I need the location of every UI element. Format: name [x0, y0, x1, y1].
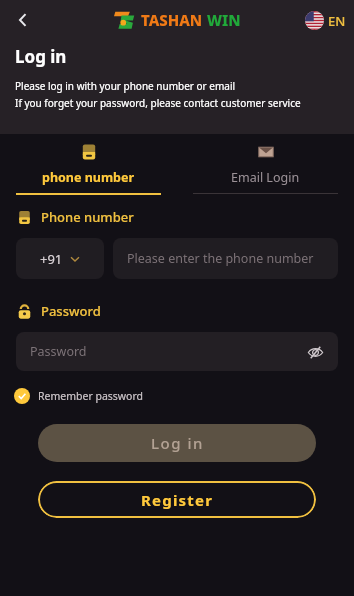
staticText: Password [41, 302, 101, 320]
staticText: Log in [15, 45, 67, 68]
staticText: Password [30, 343, 87, 360]
button[interactable]: +91 [16, 238, 104, 279]
staticText: TASHAN [141, 10, 203, 30]
staticText: Please enter the phone number [127, 250, 314, 267]
button[interactable]: Back [6, 3, 40, 37]
button[interactable]: Log in [38, 424, 316, 462]
staticText: phone number [42, 169, 135, 186]
button[interactable]: EN [305, 11, 346, 30]
button[interactable]: Remember password [14, 388, 144, 404]
staticText: Log in [151, 433, 204, 453]
button[interactable]: Password [16, 332, 338, 371]
button[interactable]: Email Login [177, 134, 354, 194]
staticText: Phone number [41, 208, 134, 226]
staticText: Remember password [38, 389, 144, 403]
button[interactable]: phone number [0, 134, 177, 195]
staticText: Please log in with your phone number or … [15, 79, 236, 93]
staticText: EN [328, 12, 346, 30]
button[interactable]: Register [38, 481, 316, 518]
staticText: Register [141, 490, 214, 510]
button[interactable]: Please enter the phone number [113, 238, 338, 279]
staticText: WIN [207, 10, 241, 30]
staticText: Email Login [231, 169, 300, 186]
button[interactable]: Show password [302, 339, 328, 365]
staticText: +91 [40, 250, 63, 268]
staticText: If you forget your password, please cont… [15, 96, 301, 110]
